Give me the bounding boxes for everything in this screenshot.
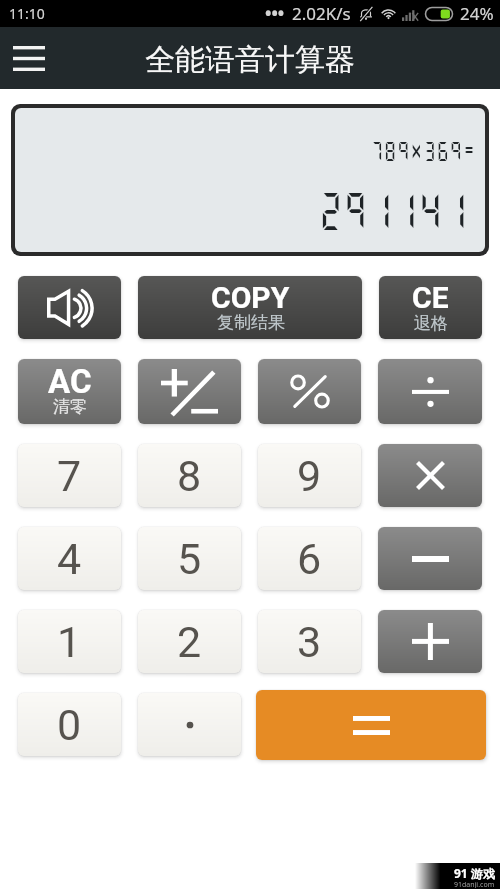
- button[interactable]: Subtract: [378, 527, 482, 590]
- button[interactable]: 3: [258, 610, 361, 673]
- staticText: 4: [57, 534, 82, 584]
- staticText: 7: [57, 451, 82, 501]
- button[interactable]: 4: [18, 527, 121, 590]
- staticText: 6: [297, 534, 322, 584]
- button[interactable]: Equals: [256, 690, 486, 760]
- staticText: 91danji.com: [454, 880, 495, 888]
- staticText: 2: [177, 617, 202, 667]
- button[interactable]: Plus minus sign: [138, 359, 241, 424]
- button[interactable]: Divide: [378, 359, 482, 424]
- button[interactable]: 0: [18, 693, 121, 756]
- staticText: 789×369=: [370, 138, 476, 163]
- staticText: 清零: [53, 396, 87, 417]
- button[interactable]: CE backspace: [379, 276, 482, 339]
- button[interactable]: 7: [18, 444, 121, 507]
- button[interactable]: 1: [18, 610, 121, 673]
- staticText: AC: [48, 362, 92, 401]
- staticText: 24%: [460, 2, 494, 25]
- staticText: 退格: [414, 313, 448, 334]
- staticText: 91 游戏: [454, 865, 495, 881]
- staticText: 5: [177, 534, 202, 584]
- staticText: COPY: [211, 280, 290, 315]
- staticText: 3: [297, 617, 322, 667]
- staticText: 11:10: [9, 4, 45, 23]
- button[interactable]: 8: [138, 444, 241, 507]
- staticText: 复制结果: [217, 312, 285, 333]
- staticText: 9: [297, 451, 322, 501]
- button[interactable]: Copy result: [138, 276, 362, 339]
- button[interactable]: Menu: [0, 27, 58, 89]
- button[interactable]: Decimal point: [138, 693, 241, 756]
- button[interactable]: Multiply: [378, 444, 482, 507]
- button[interactable]: Add: [378, 610, 482, 673]
- button[interactable]: 6: [258, 527, 361, 590]
- button[interactable]: 2: [138, 610, 241, 673]
- staticText: 1: [57, 617, 82, 667]
- button[interactable]: Percent: [258, 359, 361, 424]
- staticText: 全能语音计算器: [145, 41, 355, 79]
- staticText: •••: [265, 2, 285, 25]
- button[interactable]: Speak result: [18, 276, 121, 339]
- button[interactable]: AC clear: [18, 359, 121, 424]
- button[interactable]: 5: [138, 527, 241, 590]
- staticText: 0: [57, 700, 82, 750]
- button[interactable]: 9: [258, 444, 361, 507]
- staticText: CE: [412, 280, 449, 315]
- staticText: 291141: [318, 187, 468, 233]
- staticText: 8: [177, 451, 202, 501]
- staticText: 2.02K/s: [292, 2, 351, 25]
